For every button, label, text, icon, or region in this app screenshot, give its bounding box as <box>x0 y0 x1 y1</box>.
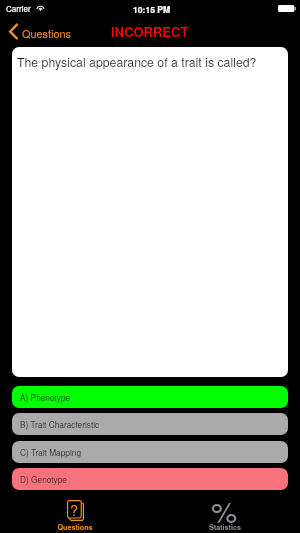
staticText: Questions <box>22 25 71 41</box>
other: Questions tab <box>67 500 84 521</box>
staticText: ? <box>70 499 79 520</box>
staticText: 10:15 PM <box>133 3 171 15</box>
staticText: Statistics <box>209 522 241 532</box>
staticText: A) Phenotype <box>20 391 71 403</box>
staticText: C) Trait Mapping <box>20 446 81 458</box>
staticText: Carrier <box>6 3 31 15</box>
staticText: D) Genotype <box>20 473 67 485</box>
staticText: B) Trait Characteristic <box>20 418 100 430</box>
button[interactable]: % <box>150 490 300 533</box>
button[interactable]: B) Trait Characteristic <box>12 413 288 435</box>
staticText: Questions <box>57 522 93 532</box>
button[interactable]: Questions <box>4 20 80 42</box>
button[interactable]: Questions tab <box>0 490 150 533</box>
button[interactable]: D) Genotype <box>12 468 288 490</box>
staticText: INCORRECT <box>111 22 189 41</box>
button[interactable]: C) Trait Mapping <box>12 441 288 463</box>
button[interactable]: A) Phenotype <box>12 386 288 408</box>
staticText: % <box>211 489 238 531</box>
staticText: The physical appearance of a trait is ca… <box>17 53 257 71</box>
